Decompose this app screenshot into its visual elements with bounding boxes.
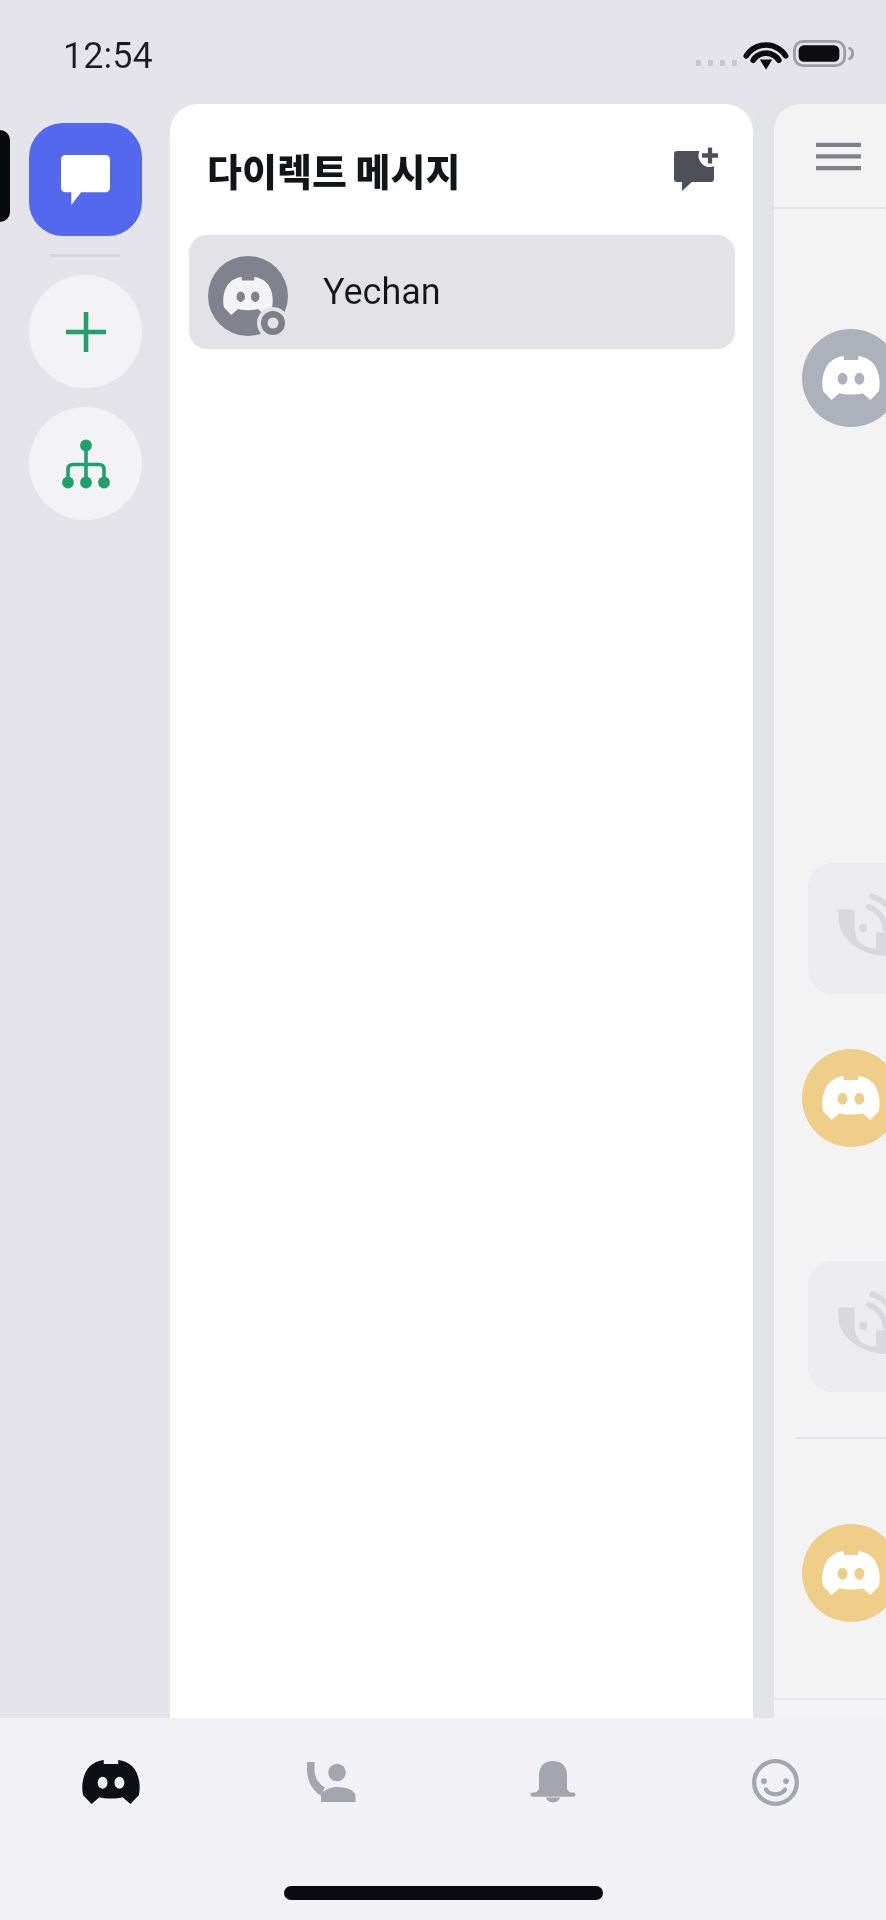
button[interactable]: You [664, 1718, 886, 1846]
button[interactable]: Direct Messages [29, 123, 142, 236]
button[interactable]: Yechan [189, 235, 735, 349]
button[interactable]: Add a Server [29, 275, 142, 388]
staticText: 12:54 [63, 35, 153, 77]
button[interactable]: Notifications [442, 1718, 664, 1846]
button[interactable]: Explore Public Servers [29, 407, 142, 520]
button[interactable]: Friends [221, 1718, 442, 1846]
button[interactable]: Messages [0, 1718, 221, 1846]
staticText: 다이렉트 메시지 [207, 142, 461, 197]
button[interactable]: New Direct Message [660, 132, 736, 208]
staticText: Yechan [323, 271, 441, 313]
